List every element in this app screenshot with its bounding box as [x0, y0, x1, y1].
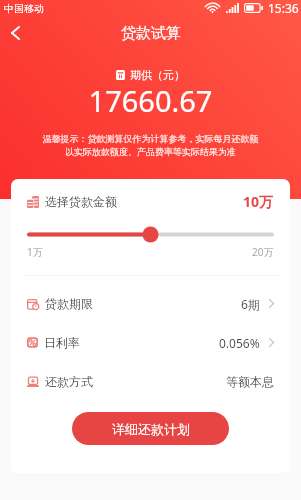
staticText: 日利率 [44, 335, 80, 350]
staticText: 15:36 [268, 0, 299, 16]
button[interactable]: 详细还款计划 [72, 412, 229, 445]
staticText: 6期 [241, 296, 260, 312]
staticText: 贷款期限 [45, 296, 93, 311]
staticText: 详细还款计划 [112, 421, 190, 437]
staticText: 选择贷款金额 [45, 194, 117, 209]
staticText: 17660.67 [0, 81, 301, 120]
button[interactable]: 贷款期限 [11, 284, 290, 323]
staticText: 10万 [243, 192, 274, 211]
staticText: 中国移动 [4, 2, 44, 15]
button[interactable]: Back [0, 17, 31, 48]
staticText: 1万 [27, 245, 43, 258]
staticText: 贷款试算 [121, 24, 181, 43]
staticText: 还款方式 [45, 374, 93, 389]
button[interactable]: 还款方式 [11, 362, 290, 401]
staticText: 0.056% [219, 335, 260, 351]
button[interactable]: 日利率 [11, 323, 290, 362]
staticText: 期供（元） [130, 68, 185, 81]
staticText: 温馨提示：贷款测算仅作为计算参考，实际每月还款额以实际放款额度、产品费率等实际结… [42, 133, 259, 158]
staticText: 等额本息 [226, 374, 274, 389]
staticText: 20万 [252, 245, 274, 258]
